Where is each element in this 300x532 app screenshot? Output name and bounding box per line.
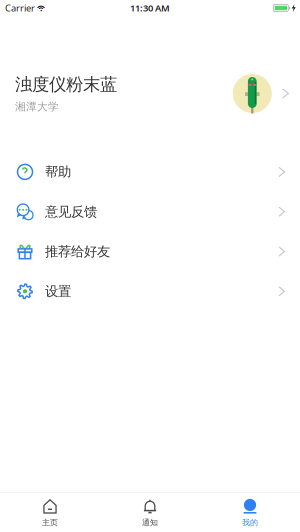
- staticText: 浊度仪粉末蓝: [15, 74, 117, 95]
- staticText: 我的: [242, 518, 258, 528]
- button[interactable]: 推荐给好友: [0, 232, 300, 271]
- button[interactable]: 意见反馈: [0, 192, 300, 232]
- button[interactable]: 我的: [200, 493, 300, 532]
- staticText: 主页: [42, 518, 58, 528]
- staticText: 意见反馈: [45, 203, 97, 220]
- staticText: 11:30 AM: [130, 2, 170, 14]
- button[interactable]: 通知: [100, 493, 200, 532]
- button[interactable]: 主页: [0, 493, 100, 532]
- staticText: 通知: [142, 518, 158, 528]
- staticText: Carrier: [5, 2, 35, 14]
- staticText: 帮助: [45, 164, 71, 180]
- button[interactable]: 帮助: [0, 152, 300, 192]
- button[interactable]: 设置: [0, 271, 300, 311]
- staticText: 推荐给好友: [45, 243, 110, 260]
- staticText: 湘潭大学: [15, 100, 59, 113]
- button[interactable]: 浊度仪粉末蓝: [0, 70, 300, 117]
- staticText: 设置: [45, 283, 71, 299]
